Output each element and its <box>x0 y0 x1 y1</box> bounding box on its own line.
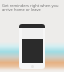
staticText: Get reminders right when you arrive home… <box>2 3 62 12</box>
